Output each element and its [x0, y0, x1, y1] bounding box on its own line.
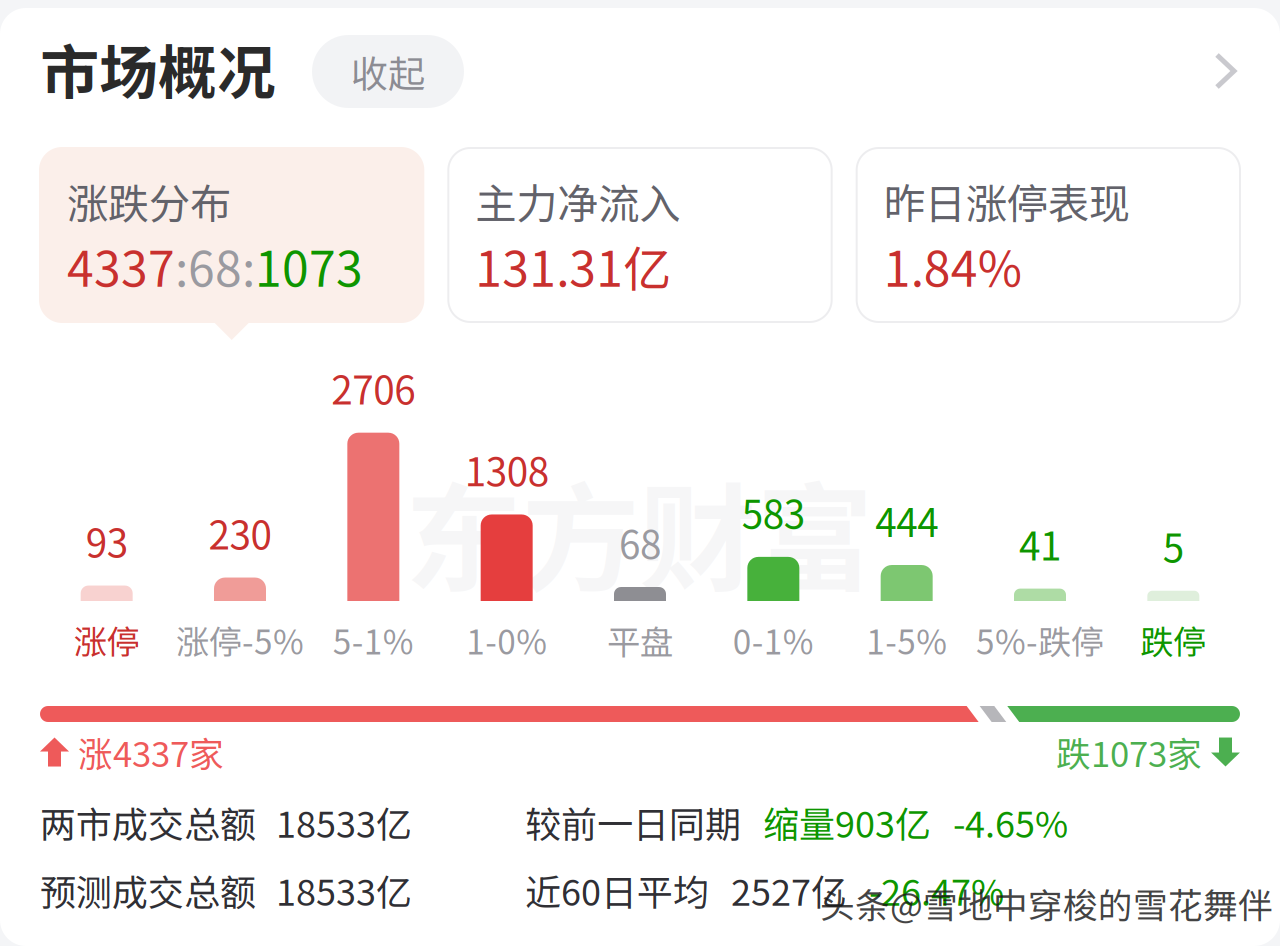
- staticText: 5: [1163, 518, 1184, 574]
- staticText: 两市成交总额: [40, 796, 256, 848]
- staticText: 跌1073家: [1056, 727, 1202, 777]
- staticText: 0-1%: [733, 616, 814, 664]
- staticText: 涨停: [74, 616, 140, 664]
- staticText: 东方财富: [405, 446, 873, 616]
- staticText: 5-1%: [333, 616, 414, 664]
- staticText: 2706: [331, 360, 415, 416]
- button[interactable]: 收起: [312, 35, 464, 108]
- staticText: 昨日涨停表现: [884, 171, 1130, 231]
- staticText: 涨停-5%: [176, 616, 304, 664]
- staticText: 4337: [67, 231, 175, 300]
- staticText: 跌停: [1140, 616, 1206, 664]
- staticText: 头条@雪地中穿梭的雪花舞伴: [820, 878, 1273, 928]
- staticText: 预测成交总额: [40, 864, 256, 916]
- staticText: 444: [875, 492, 938, 548]
- staticText: 缩量903亿: [763, 796, 931, 848]
- button[interactable]: 主力净流入: [448, 148, 832, 322]
- staticText: 涨跌分布: [67, 171, 231, 231]
- button[interactable]: 展开市场概况: [1213, 51, 1238, 91]
- staticText: :: [175, 231, 188, 300]
- staticText: 68: [619, 514, 661, 570]
- staticText: 近60日平均: [525, 864, 709, 916]
- staticText: 1.84%: [884, 231, 1022, 300]
- staticText: :: [242, 231, 255, 300]
- staticText: 1308: [465, 441, 549, 497]
- staticText: 93: [86, 513, 128, 569]
- staticText: 1-0%: [466, 616, 547, 664]
- staticText: 131.31亿: [475, 231, 671, 300]
- button[interactable]: 涨跌分布: [40, 148, 423, 322]
- staticText: 1-5%: [866, 616, 947, 664]
- staticText: 18533亿: [276, 796, 412, 848]
- staticText: 18533亿: [276, 864, 412, 916]
- staticText: -26.47%: [869, 864, 1004, 916]
- staticText: 2527亿: [731, 864, 847, 916]
- staticText: 较前一日同期: [525, 796, 741, 848]
- staticText: 平盘: [607, 616, 673, 664]
- staticText: 1073: [255, 231, 363, 300]
- staticText: 230: [208, 505, 271, 561]
- staticText: 68: [188, 231, 242, 300]
- staticText: 主力净流入: [475, 171, 680, 231]
- button[interactable]: 昨日涨停表现: [857, 148, 1240, 322]
- staticText: 涨4337家: [78, 727, 224, 777]
- staticText: 市场概况: [40, 26, 276, 111]
- staticText: -4.65%: [953, 796, 1068, 848]
- staticText: 收起: [351, 44, 425, 99]
- staticText: 5%-跌停: [976, 616, 1104, 664]
- staticText: 583: [742, 484, 805, 540]
- staticText: 41: [1019, 516, 1061, 572]
